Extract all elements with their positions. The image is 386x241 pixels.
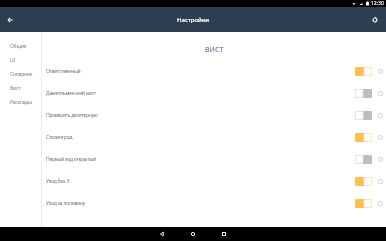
staticText: Общие [10, 43, 27, 50]
button[interactable]: Reset [368, 13, 382, 27]
button[interactable]: Джентльменский вист [42, 82, 386, 104]
button[interactable]: Соперник [0, 67, 41, 81]
button[interactable]: Back [155, 227, 169, 241]
staticText: Ответственный [46, 68, 355, 75]
button[interactable]: Toggle [355, 66, 372, 77]
button[interactable]: Toggle [355, 198, 372, 209]
button[interactable]: Расклады [0, 95, 41, 109]
staticText: ВИСТ [205, 45, 224, 55]
button[interactable]: Вист [0, 81, 41, 95]
button[interactable]: Info [376, 89, 384, 97]
staticText: 12:30 [371, 0, 384, 7]
button[interactable]: Toggle [355, 88, 372, 99]
staticText: Сталинград [46, 134, 355, 141]
button[interactable]: Info [376, 133, 384, 141]
staticText: Джентльменский вист [46, 90, 355, 97]
staticText: Соперник [10, 71, 33, 78]
staticText: Настройки [177, 16, 210, 24]
button[interactable]: Info [376, 177, 384, 185]
button[interactable]: Сталинград [42, 126, 386, 148]
button[interactable]: Info [376, 111, 384, 119]
button[interactable]: Home [186, 227, 200, 241]
button[interactable]: Info [376, 67, 384, 75]
button[interactable]: Back [3, 13, 17, 27]
button[interactable]: Ответственный [42, 60, 386, 82]
staticText: Первый ход открытый [46, 156, 355, 163]
button[interactable]: Info [376, 155, 384, 163]
staticText: Уход без 3 [46, 178, 355, 185]
button[interactable]: UI [0, 53, 41, 67]
staticText: UI [10, 57, 15, 64]
button[interactable]: Toggle [355, 132, 372, 143]
staticText: Вист [10, 85, 21, 92]
button[interactable]: Общие [0, 39, 41, 53]
staticText: Расклады [10, 99, 32, 106]
button[interactable]: Toggle [355, 154, 372, 165]
button[interactable]: Recents [217, 227, 231, 241]
staticText: Уход за половину [46, 200, 355, 207]
button[interactable]: Toggle [355, 176, 372, 187]
button[interactable]: Первый ход открытый [42, 148, 386, 170]
button[interactable]: Toggle [355, 110, 372, 121]
button[interactable]: Уход без 3 [42, 170, 386, 192]
button[interactable]: Info [376, 199, 384, 207]
button[interactable]: Проверять десятерную [42, 104, 386, 126]
staticText: Проверять десятерную [46, 112, 355, 119]
button[interactable]: Уход за половину [42, 192, 386, 214]
